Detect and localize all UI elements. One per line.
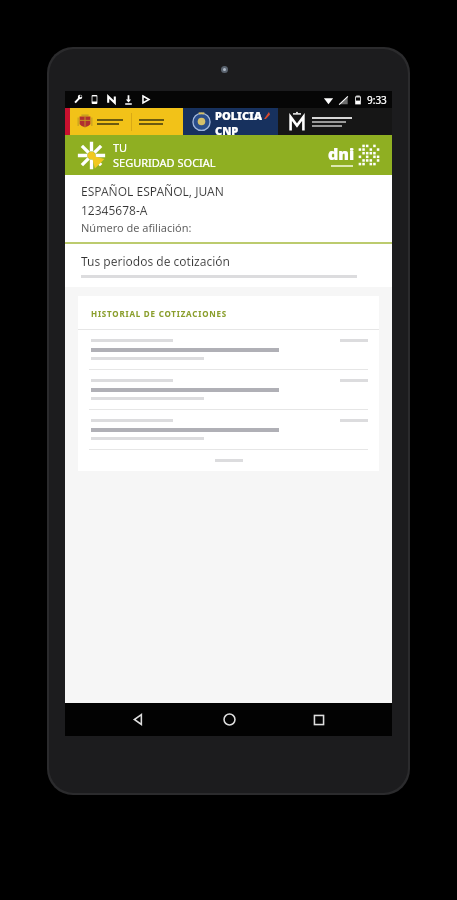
staticText: TU [113, 140, 128, 155]
staticText: 12345678-A [81, 202, 148, 218]
button[interactable]: Back [120, 703, 156, 736]
staticText: SEGURIDAD SOCIAL [113, 155, 216, 170]
button[interactable] [278, 108, 392, 135]
staticText: 9:33 [367, 93, 387, 107]
staticText: dni [328, 143, 355, 165]
button[interactable]: POLICIA [183, 108, 278, 135]
staticText: Tus periodos de cotización [81, 253, 230, 269]
button[interactable] [78, 410, 379, 449]
staticText: Número de afiliación: [81, 220, 192, 235]
button[interactable] [65, 108, 183, 135]
staticText: HISTORIAL DE COTIZACIONES [91, 308, 228, 319]
other: DNI electronico [358, 144, 380, 166]
button[interactable]: Seguridad Social [65, 135, 392, 175]
staticText: ESPAÑOL ESPAÑOL, JUAN [81, 183, 224, 199]
button[interactable] [78, 330, 379, 369]
button[interactable] [78, 370, 379, 409]
button[interactable]: HISTORIAL DE COTIZACIONES [78, 296, 379, 471]
button[interactable]: Recents [301, 703, 337, 736]
other: Seguridad Social [77, 141, 106, 170]
staticText: POLICIA [215, 108, 262, 123]
button[interactable]: Home [211, 703, 247, 736]
staticText: CNP [215, 123, 239, 135]
